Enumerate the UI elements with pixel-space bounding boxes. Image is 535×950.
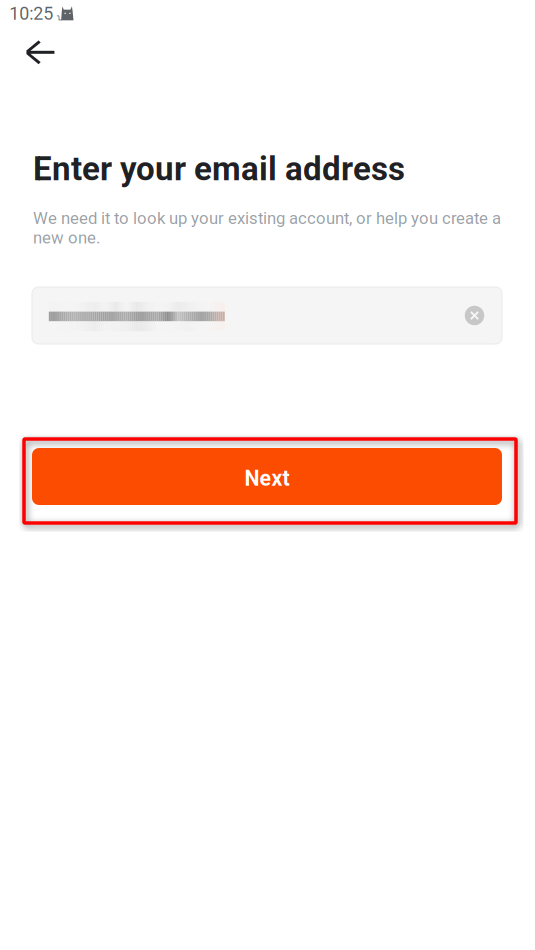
button[interactable]: Back — [16, 28, 64, 76]
staticText: Enter your email address — [33, 150, 405, 188]
button[interactable]: Next — [32, 448, 502, 505]
staticText: We need it to look up your existing acco… — [33, 208, 501, 248]
staticText: 10:25 — [9, 3, 53, 24]
button[interactable]: Clear text — [452, 293, 496, 337]
staticText: Next — [244, 466, 289, 491]
